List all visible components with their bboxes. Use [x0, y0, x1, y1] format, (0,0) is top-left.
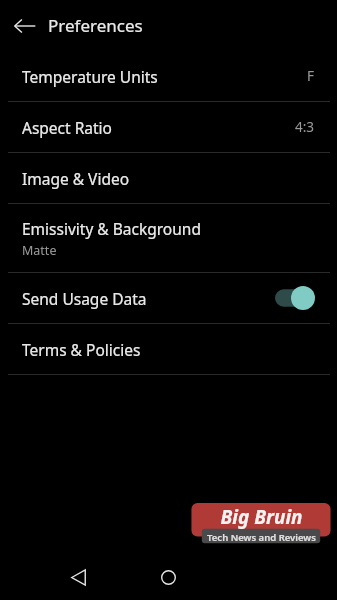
- button[interactable]: Home: [152, 561, 184, 593]
- button[interactable]: Back: [62, 561, 94, 593]
- staticText: Image & Video: [22, 168, 130, 189]
- staticText: 4:3: [295, 118, 315, 136]
- staticText: Aspect Ratio: [22, 117, 112, 138]
- staticText: Temperature Units: [22, 66, 158, 87]
- staticText: Emissivity & Background: [22, 218, 201, 239]
- staticText: Terms & Policies: [22, 339, 141, 360]
- staticText: F: [307, 67, 315, 85]
- button[interactable]: Back: [5, 6, 45, 46]
- staticText: Matte: [22, 242, 57, 259]
- button[interactable]: Send Usage Data toggle: [275, 286, 315, 310]
- staticText: Tech News and Reviews: [207, 531, 316, 544]
- staticText: Big Bruin: [220, 504, 303, 530]
- button[interactable]: Terms & Policies: [0, 324, 337, 374]
- staticText: Preferences: [48, 14, 143, 37]
- button[interactable]: Emissivity & Background: [0, 204, 337, 272]
- button[interactable]: Image & Video: [0, 153, 337, 203]
- button[interactable]: Send Usage Data: [0, 273, 337, 323]
- button[interactable]: Aspect Ratio: [0, 102, 337, 152]
- button[interactable]: Temperature Units: [0, 51, 337, 101]
- staticText: Send Usage Data: [22, 288, 147, 309]
